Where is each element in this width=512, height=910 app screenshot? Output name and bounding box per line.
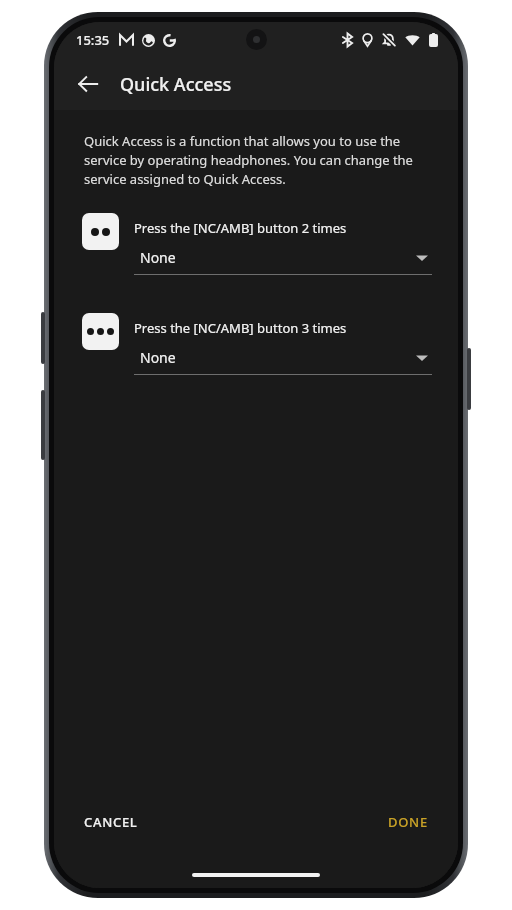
staticText: Quick Access is a function that allows y… — [84, 132, 432, 188]
button[interactable]: None — [134, 348, 432, 375]
button[interactable]: DONE — [376, 803, 440, 841]
staticText: Quick Access — [120, 72, 232, 97]
staticText: None — [140, 248, 176, 267]
button[interactable]: CANCEL — [72, 803, 150, 841]
button[interactable]: None — [134, 248, 432, 275]
staticText: Press the [NC/AMB] button 3 times — [134, 319, 347, 337]
staticText: Press the [NC/AMB] button 2 times — [134, 219, 347, 237]
staticText: None — [140, 348, 176, 367]
staticText: CANCEL — [84, 813, 138, 831]
staticText: DONE — [388, 813, 428, 831]
staticText: 15:35 — [76, 31, 110, 49]
button[interactable]: Back — [66, 62, 110, 106]
